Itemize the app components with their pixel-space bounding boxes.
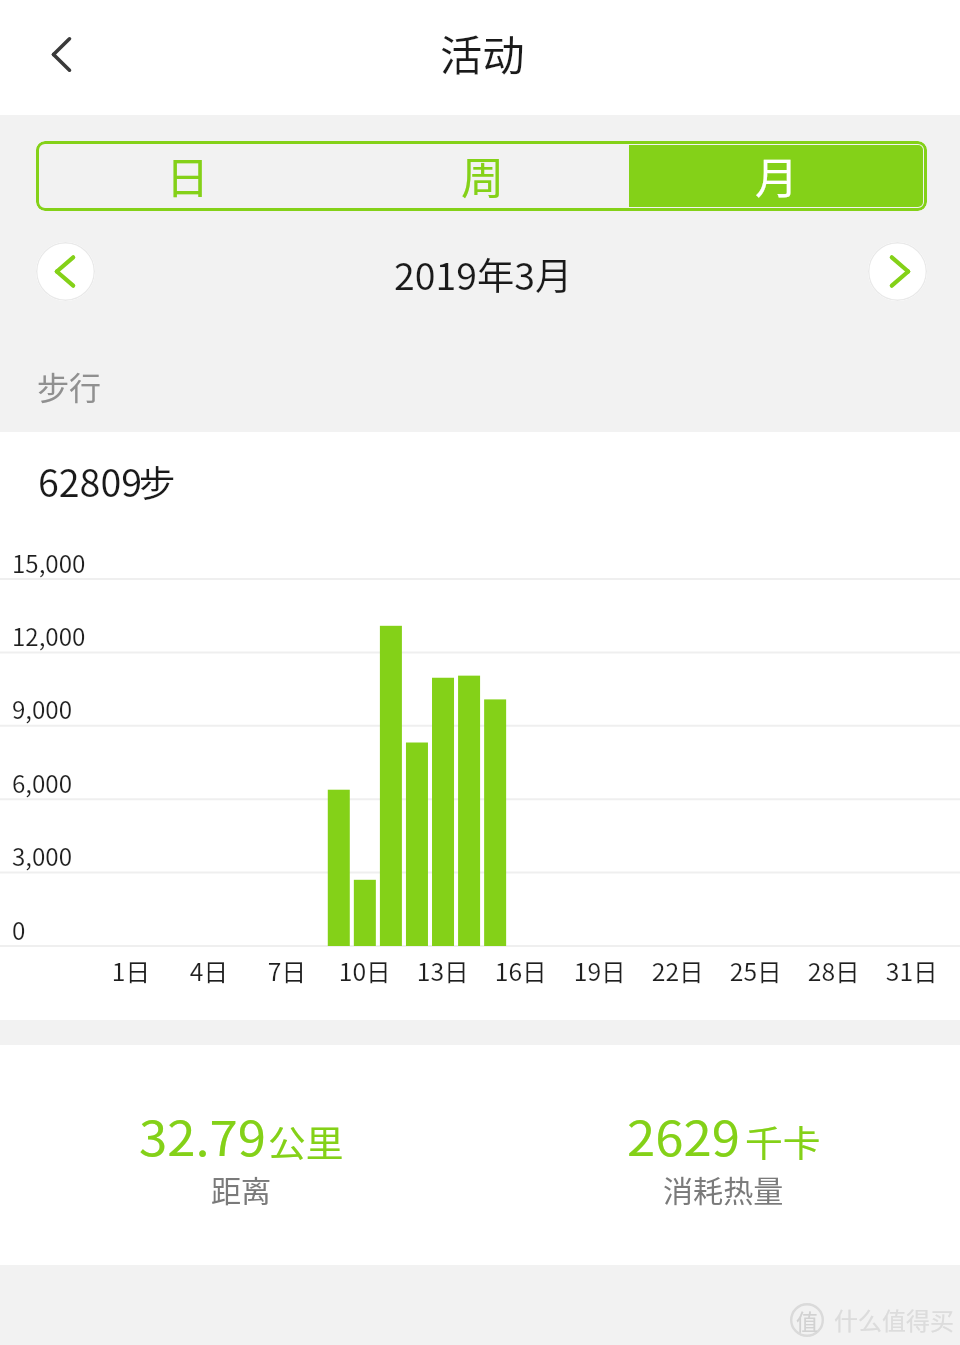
button[interactable]: 月 xyxy=(629,145,923,207)
staticText: 32.79 xyxy=(139,1100,267,1170)
staticText: 16日 xyxy=(495,953,547,988)
staticText: 7日 xyxy=(268,953,306,988)
button[interactable]: 周 xyxy=(335,145,629,207)
staticText: 31日 xyxy=(886,953,938,988)
staticText: 步行 xyxy=(37,363,102,409)
button[interactable]: Previous month xyxy=(36,242,95,301)
staticText: 什么值得买 xyxy=(834,1302,954,1337)
staticText: 28日 xyxy=(808,953,860,988)
staticText: 25日 xyxy=(730,953,782,988)
staticText: 值 xyxy=(796,1304,819,1336)
staticText: 22日 xyxy=(652,953,704,988)
staticText: 月 xyxy=(755,145,798,206)
staticText: 2629 xyxy=(627,1100,740,1170)
staticText: 6,000 xyxy=(12,765,73,799)
staticText: 15,000 xyxy=(12,545,86,579)
staticText: 活动 xyxy=(440,23,526,83)
staticText: 1日 xyxy=(112,953,150,988)
staticText: 12,000 xyxy=(12,618,86,652)
staticText: 62809 xyxy=(38,453,143,507)
staticText: 10日 xyxy=(339,953,391,988)
staticText: 步 xyxy=(139,455,176,507)
staticText: 距离 xyxy=(211,1167,272,1210)
staticText: 日 xyxy=(166,145,209,206)
staticText: 4日 xyxy=(190,953,228,988)
button[interactable]: 32.79 xyxy=(32,1045,392,1265)
button[interactable]: 2629 xyxy=(484,1045,844,1265)
staticText: 公里 xyxy=(268,1115,344,1167)
staticText: 千卡 xyxy=(745,1115,821,1167)
button[interactable]: Back xyxy=(22,20,98,96)
staticText: 19日 xyxy=(574,953,626,988)
button[interactable]: 日 xyxy=(40,145,335,207)
staticText: 2019年3月 xyxy=(394,247,573,301)
staticText: 0 xyxy=(12,912,26,946)
staticText: 消耗热量 xyxy=(663,1167,784,1210)
staticText: 周 xyxy=(461,145,504,206)
button[interactable]: Next month xyxy=(868,242,927,301)
staticText: 3,000 xyxy=(12,838,73,872)
staticText: 9,000 xyxy=(12,691,73,725)
staticText: 13日 xyxy=(417,953,469,988)
